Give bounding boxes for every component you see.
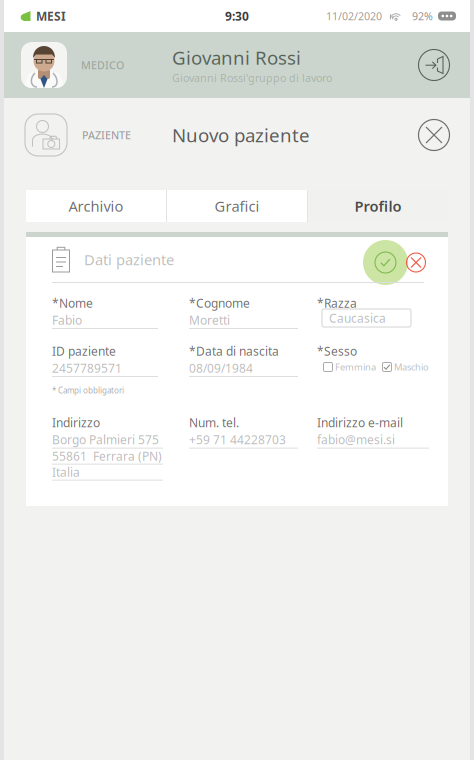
staticText: Grafici — [214, 196, 259, 216]
button[interactable]: Chiudi — [416, 117, 452, 153]
staticText: Giovanni Rossi'gruppo di lavoro — [172, 71, 332, 85]
button[interactable]: Esci — [416, 47, 452, 83]
staticText: fabio@mesi.si — [317, 432, 395, 448]
staticText: *Razza — [317, 295, 357, 311]
staticText: Italia — [52, 464, 80, 480]
staticText: *Nome — [52, 295, 93, 311]
staticText: 55861 Ferrara (PN) — [52, 448, 162, 464]
staticText: *Sesso — [317, 343, 357, 359]
button[interactable]: Maschio — [382, 360, 429, 374]
staticText: Dati paziente — [84, 250, 174, 269]
staticText: ID paziente — [52, 343, 116, 359]
button[interactable]: Grafici — [167, 190, 307, 222]
staticText: Giovanni Rossi — [172, 45, 301, 70]
staticText: PAZIENTE — [82, 128, 131, 142]
staticText: MEDICO — [81, 58, 124, 72]
staticText: 2457789571 — [52, 360, 122, 376]
staticText: Nuovo paziente — [172, 123, 310, 147]
button[interactable]: Archivio — [26, 190, 166, 222]
staticText: Indirizzo — [52, 415, 100, 431]
staticText: *Cognome — [189, 295, 250, 311]
staticText: Femmina — [335, 361, 376, 373]
staticText: *Data di nascita — [189, 343, 279, 359]
staticText: Fabio — [52, 312, 82, 328]
staticText: Maschio — [394, 361, 429, 373]
staticText: Archivio — [68, 196, 123, 216]
staticText: Borgo Palmieri 575 — [52, 432, 159, 448]
staticText: 92% — [412, 9, 433, 23]
staticText: Indirizzo e-mail — [317, 415, 403, 431]
staticText: Caucasica — [329, 310, 386, 326]
staticText: 08/09/1984 — [189, 360, 253, 376]
staticText: Profilo — [354, 196, 401, 216]
staticText: 11/02/2020 — [326, 9, 382, 23]
button[interactable]: Femmina — [323, 360, 376, 374]
button[interactable]: Profilo — [308, 190, 448, 222]
staticText: Num. tel. — [189, 415, 239, 431]
staticText: MESI — [36, 8, 66, 24]
staticText: 9:30 — [225, 8, 249, 24]
button[interactable]: Conferma — [363, 240, 408, 285]
button[interactable]: Annulla — [401, 247, 431, 277]
staticText: * Campi obbligatori — [52, 385, 124, 396]
button[interactable]: Foto paziente — [22, 111, 70, 159]
staticText: +59 71 44228703 — [189, 432, 286, 448]
staticText: Moretti — [189, 312, 230, 328]
